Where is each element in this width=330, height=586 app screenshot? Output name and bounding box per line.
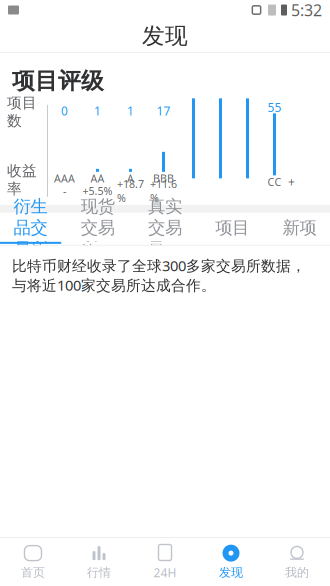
staticText: 项目 [215, 217, 249, 238]
staticText: A [127, 171, 134, 185]
staticText: 1 [127, 103, 134, 119]
staticText: 我的 [285, 565, 309, 580]
button[interactable]: 现货交易所 [67, 214, 128, 244]
button[interactable]: 24H [132, 539, 198, 585]
staticText: 真实交易量 [148, 196, 182, 260]
button[interactable]: 行情 [66, 539, 132, 585]
staticText: 收益率 [7, 162, 37, 198]
staticText: 现货交易所 [81, 196, 115, 260]
staticText: 发现 [142, 22, 188, 50]
staticText: 衍生品交易所 [14, 196, 48, 260]
staticText: +11.6% [150, 177, 177, 205]
button[interactable]: 发现 [198, 539, 264, 585]
staticText: BBB [153, 171, 174, 185]
staticText: 55 [267, 99, 281, 115]
staticText: +18.7% [117, 177, 144, 205]
staticText: 1 [94, 103, 101, 119]
staticText: + [288, 174, 295, 190]
staticText: 行情 [87, 565, 111, 580]
staticText: - [63, 184, 66, 198]
button[interactable]: 首页 [0, 539, 66, 585]
button[interactable]: 项目 [202, 214, 263, 244]
staticText: 比特币财经收录了全球300多家交易所数据，与将近100家交易所达成合作。 [12, 256, 306, 295]
button[interactable]: 新项 [269, 214, 330, 244]
staticText: 24H [153, 564, 176, 580]
staticText: 新项 [282, 217, 316, 238]
staticText: 项目评级 [12, 67, 104, 95]
staticText: AAA [54, 171, 75, 185]
staticText: 发现 [219, 565, 243, 580]
button[interactable]: 衍生品交易所 [0, 214, 61, 244]
staticText: CC [267, 175, 281, 189]
button[interactable]: 我的 [264, 539, 330, 585]
staticText: +5.5% [82, 184, 112, 198]
button[interactable]: 真实交易量 [134, 214, 196, 244]
staticText: AA [90, 171, 104, 185]
staticText: 17 [156, 103, 170, 119]
staticText: 0 [61, 103, 68, 119]
staticText: 首页 [21, 565, 45, 580]
staticText: 5:32 [291, 0, 322, 21]
staticText: 项目数 [7, 94, 37, 130]
